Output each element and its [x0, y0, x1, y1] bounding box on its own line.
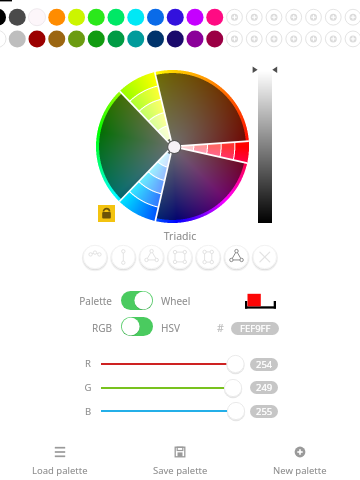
button[interactable]: Add colour [345, 9, 360, 26]
staticText: G [82, 381, 94, 394]
button[interactable]: Add colour [285, 30, 302, 47]
button[interactable]: Add colour [246, 9, 263, 26]
button[interactable]: Colour swatch [48, 9, 65, 26]
button[interactable]: Colour swatch [68, 30, 85, 47]
button[interactable]: Add colour [226, 30, 243, 47]
button[interactable]: Triadic [225, 245, 249, 269]
staticText: # [217, 321, 224, 335]
button[interactable]: Colour swatch [127, 30, 144, 47]
staticText: Palette [62, 294, 112, 308]
staticText: R [82, 357, 94, 370]
button[interactable]: B value 255 [101, 401, 247, 421]
button[interactable]: Palette or Wheel [121, 291, 153, 310]
button[interactable]: Colour swatch [9, 30, 26, 47]
button[interactable]: Colour swatch [29, 30, 46, 47]
button[interactable]: RGB or HSV [121, 317, 153, 336]
button[interactable]: Brightness [256, 66, 274, 226]
staticText: 255 [256, 405, 273, 418]
button[interactable]: Colour swatch [167, 9, 184, 26]
button[interactable]: Colour swatch [68, 9, 85, 26]
button[interactable]: Add colour [246, 30, 263, 47]
staticText: 254 [256, 358, 273, 371]
staticText: RGB [62, 321, 112, 335]
button[interactable]: # [217, 321, 224, 335]
button[interactable]: Colour swatch [88, 30, 105, 47]
button[interactable]: Colour swatch [88, 9, 105, 26]
button[interactable]: Palette [62, 294, 112, 308]
button[interactable]: Split complementary [140, 245, 164, 269]
button[interactable]: Add colour [266, 30, 283, 47]
button[interactable]: 249 [250, 381, 278, 394]
staticText: Save palette [153, 464, 208, 477]
button[interactable]: Colour swatch [0, 9, 6, 26]
button[interactable]: RGB [62, 321, 112, 335]
button[interactable]: Colour swatch [147, 9, 164, 26]
staticText: HSV [161, 321, 211, 335]
button[interactable]: Add colour [345, 30, 360, 47]
button[interactable]: Add colour [266, 9, 283, 26]
button[interactable]: HSV [161, 321, 211, 335]
button[interactable]: Add colour [325, 30, 342, 47]
button[interactable]: Analogous [83, 245, 107, 269]
button[interactable]: Colour swatch [127, 9, 144, 26]
button[interactable]: Triadic [130, 229, 230, 243]
button[interactable]: Rectangle [196, 245, 220, 269]
button[interactable]: 255 [250, 405, 278, 418]
button[interactable]: Complementary [111, 245, 135, 269]
button[interactable]: Colour swatch [206, 30, 223, 47]
button[interactable]: No harmony [253, 245, 277, 269]
button[interactable]: Colour swatch [9, 9, 26, 26]
staticText: 249 [256, 381, 273, 394]
button[interactable]: Load palette [0, 436, 120, 477]
button[interactable]: Colour swatch [206, 9, 223, 26]
button[interactable]: Add colour [226, 9, 243, 26]
button[interactable]: Colour swatch [0, 30, 6, 47]
button[interactable]: Colour swatch [187, 9, 204, 26]
button[interactable]: Colour swatch [108, 30, 125, 47]
button[interactable]: Save palette [120, 436, 240, 477]
staticText: Wheel [161, 294, 211, 308]
staticText: New palette [273, 464, 327, 477]
button[interactable]: New palette [240, 436, 360, 477]
button[interactable]: Colour swatch [147, 30, 164, 47]
staticText: Load palette [32, 464, 88, 477]
button[interactable]: Colour swatch [167, 30, 184, 47]
staticText: FEF9FF [240, 322, 271, 335]
staticText: B [82, 405, 94, 418]
button[interactable]: Lock colour [98, 205, 115, 222]
button[interactable]: Current colour [243, 291, 278, 311]
button[interactable]: R value 254 [101, 354, 247, 374]
button[interactable]: Colour swatch [187, 30, 204, 47]
button[interactable]: Colour swatch [29, 9, 46, 26]
button[interactable]: Add colour [305, 9, 322, 26]
button[interactable]: G value 249 [101, 378, 247, 398]
button[interactable]: Colour swatch [108, 9, 125, 26]
button[interactable]: Square [168, 245, 192, 269]
button[interactable]: FEF9FF [231, 322, 279, 335]
button[interactable]: Colour wheel [96, 70, 249, 223]
button[interactable]: 254 [250, 358, 278, 371]
staticText: Triadic [130, 229, 230, 243]
button[interactable]: Add colour [325, 9, 342, 26]
button[interactable]: Add colour [285, 9, 302, 26]
button[interactable]: Wheel [161, 294, 211, 308]
button[interactable]: Add colour [305, 30, 322, 47]
button[interactable]: Colour swatch [48, 30, 65, 47]
